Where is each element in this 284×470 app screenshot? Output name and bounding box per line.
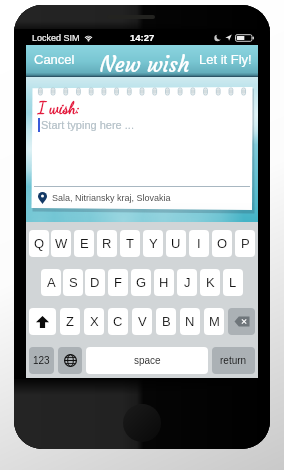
staticText: Z [66,314,74,329]
button[interactable]: D [85,269,105,296]
button[interactable]: M [204,308,224,335]
button[interactable]: Y [143,230,163,257]
button[interactable]: F [108,269,128,296]
button[interactable]: S [63,269,83,296]
button[interactable]: V [132,308,152,335]
staticText: I wish: [38,98,80,117]
staticText: Start typing here ... [41,119,134,131]
staticText: M [209,314,220,329]
button[interactable]: G [131,269,151,296]
staticText: E [80,236,89,251]
button[interactable]: Z [60,308,80,335]
button[interactable]: Q [29,230,49,257]
button[interactable]: H [154,269,174,296]
staticText: U [171,236,181,251]
staticText: C [113,314,123,329]
button[interactable]: B [156,308,176,335]
button[interactable]: I [189,230,209,257]
staticText: X [90,314,99,329]
button[interactable]: K [200,269,220,296]
staticText: Locked SIM [32,33,80,43]
staticText: F [114,275,122,290]
staticText: A [47,275,56,290]
button[interactable]: Switch keyboard [58,347,82,374]
staticText: D [90,275,100,290]
staticText: New wish [100,51,190,77]
staticText: J [184,275,191,290]
staticText: P [241,236,250,251]
staticText: R [102,236,112,251]
staticText: space [134,355,161,366]
button[interactable]: return [212,347,255,374]
staticText: N [185,314,195,329]
staticText: 14:27 [130,32,155,43]
staticText: O [217,236,228,251]
staticText: H [159,275,169,290]
button[interactable]: A [41,269,61,296]
staticText: Q [34,236,45,251]
button[interactable]: C [108,308,128,335]
staticText: S [69,275,78,290]
button[interactable]: Cancel [29,45,80,74]
staticText: V [138,314,147,329]
staticText: Cancel [34,52,75,67]
button[interactable]: Shift [29,308,56,335]
staticText: G [136,275,147,290]
button[interactable]: T [120,230,140,257]
button[interactable]: U [166,230,186,257]
staticText: Y [149,236,158,251]
staticText: I [197,236,201,251]
button[interactable]: E [74,230,94,257]
button[interactable]: W [51,230,71,257]
button[interactable]: N [180,308,200,335]
staticText: L [229,275,237,290]
staticText: W [55,236,68,251]
button[interactable]: L [223,269,243,296]
staticText: Sala, Nitriansky kraj, Slovakia [52,193,171,203]
staticText: return [220,355,247,366]
staticText: Let it Fly! [199,52,252,67]
staticText: K [206,275,215,290]
button[interactable]: Backspace [228,308,255,335]
button[interactable]: O [212,230,232,257]
button[interactable]: J [177,269,197,296]
button[interactable]: P [235,230,255,257]
button[interactable]: space [86,347,208,374]
staticText: 123 [33,355,50,366]
staticText: B [162,314,171,329]
staticText: T [126,236,134,251]
button[interactable]: 123 [29,347,54,374]
button[interactable]: R [97,230,117,257]
button[interactable]: Let it Fly! [196,45,255,74]
button[interactable]: X [84,308,104,335]
